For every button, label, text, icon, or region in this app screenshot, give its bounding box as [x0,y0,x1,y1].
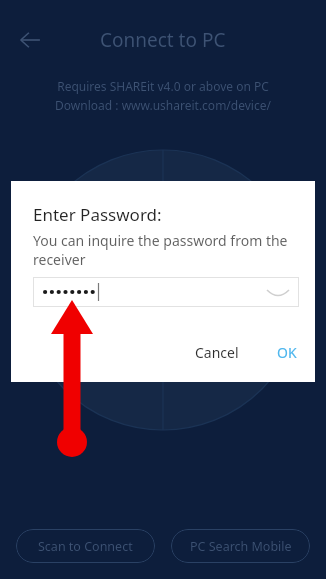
staticText: OK [277,343,297,362]
staticText: Download : www.ushareit.com/device/ [55,97,271,113]
staticText: Enter Password: [33,203,162,226]
staticText: Scan to Connect [38,538,133,555]
button[interactable] [33,277,299,307]
button[interactable]: Back [8,18,52,62]
staticText: Connect to PC [100,27,226,53]
button[interactable]: Scan to Connect [16,529,155,563]
button[interactable]: OK [267,335,307,370]
button[interactable]: PC Search Mobile [171,529,310,563]
staticText: PC Search Mobile [190,538,292,555]
staticText: Requires SHAREit v4.0 or above on PC [57,78,269,94]
staticText: Cancel [195,343,239,362]
staticText: You can inquire the password from the re… [33,231,299,269]
button[interactable]: Cancel [181,335,253,370]
